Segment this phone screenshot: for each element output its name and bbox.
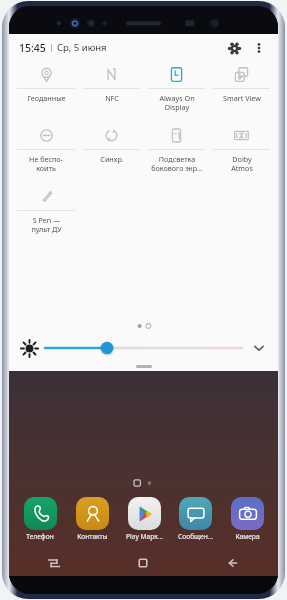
button[interactable]: Brightness xyxy=(19,338,39,358)
staticText: Синхр. xyxy=(100,154,124,164)
button[interactable]: Dolby Atmos xyxy=(209,122,274,173)
staticText: Сообщен… xyxy=(178,532,213,541)
button[interactable]: Камера xyxy=(223,497,271,541)
button[interactable]: Контакты xyxy=(68,497,116,541)
button[interactable]: Геоданные xyxy=(13,61,79,103)
button[interactable]: Recents xyxy=(9,549,98,576)
button[interactable]: Back xyxy=(188,549,278,576)
staticText: Ср, 5 июня xyxy=(57,41,107,54)
button[interactable]: More options xyxy=(248,37,270,59)
button[interactable]: Play Марк… xyxy=(120,497,168,541)
staticText: S Pen — пульт ДУ xyxy=(31,215,62,234)
button[interactable]: S Pen — пульт ДУ xyxy=(13,183,79,234)
staticText: 15:45 xyxy=(19,41,46,55)
button[interactable]: Сообщен… xyxy=(171,497,219,541)
staticText: Не беспо- коить xyxy=(29,154,63,173)
staticText: Телефон xyxy=(26,532,54,541)
button[interactable]: Smart View xyxy=(209,61,274,103)
button[interactable]: Синхр. xyxy=(79,122,144,164)
staticText: Камера xyxy=(235,532,260,541)
button[interactable]: Brightness slider xyxy=(45,337,242,359)
button[interactable]: Не беспо- коить xyxy=(13,122,79,173)
staticText: Подсветка бокового экр… xyxy=(151,154,203,173)
button[interactable]: Телефон xyxy=(16,497,64,541)
button[interactable]: Подсветка бокового экр… xyxy=(144,122,209,173)
staticText: Always On Display xyxy=(159,93,195,112)
staticText: Dolby Atmos xyxy=(231,154,253,173)
staticText: Play Марк… xyxy=(126,532,163,541)
staticText: Геоданные xyxy=(27,93,66,103)
staticText: NFC xyxy=(105,93,119,103)
staticText: Smart View xyxy=(223,93,261,103)
button[interactable]: Expand xyxy=(248,337,270,359)
button[interactable]: NFC xyxy=(79,61,144,103)
button[interactable]: Home xyxy=(98,549,188,576)
button[interactable]: Settings xyxy=(222,36,246,60)
button[interactable]: Always On Display xyxy=(144,61,209,112)
staticText: Контакты xyxy=(77,532,108,541)
